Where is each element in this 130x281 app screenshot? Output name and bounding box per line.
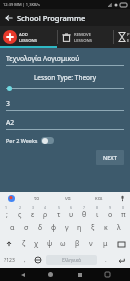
button[interactable]: Recents bbox=[73, 268, 86, 281]
staticText: κ bbox=[104, 223, 108, 233]
button[interactable]: 7 bbox=[78, 204, 91, 220]
staticText: 4 bbox=[44, 205, 47, 210]
staticText: το bbox=[34, 195, 40, 202]
button[interactable]: φ bbox=[47, 220, 60, 236]
button[interactable]: Back bbox=[16, 268, 29, 281]
button[interactable]: χ bbox=[30, 236, 43, 252]
staticText: ν bbox=[89, 239, 93, 249]
button[interactable]: ?123 bbox=[0, 252, 18, 268]
button[interactable]: 8 bbox=[91, 204, 104, 220]
staticText: γ bbox=[65, 223, 69, 233]
staticText: A2 bbox=[6, 118, 15, 127]
staticText: 1 bbox=[5, 205, 8, 210]
staticText: υ bbox=[69, 210, 74, 220]
staticText: , bbox=[24, 256, 26, 264]
staticText: χ bbox=[34, 239, 39, 249]
staticText: . bbox=[105, 256, 107, 264]
button[interactable]: 9 bbox=[104, 204, 117, 220]
staticText: Τεχνολογία Λογισμικού bbox=[6, 54, 80, 63]
staticText: Lesson Type: Theory bbox=[6, 73, 124, 82]
button[interactable]: και bbox=[83, 192, 114, 204]
button[interactable]: λ bbox=[112, 220, 125, 236]
button[interactable]: γ bbox=[60, 220, 73, 236]
button[interactable]: . bbox=[99, 252, 112, 268]
button[interactable]: ζ bbox=[17, 236, 30, 252]
staticText: 9 bbox=[109, 205, 112, 210]
button[interactable]: 5 bbox=[52, 204, 65, 220]
button[interactable]: Home bbox=[44, 268, 57, 281]
staticText: τ bbox=[57, 210, 61, 220]
button[interactable]: η bbox=[73, 220, 86, 236]
button[interactable]: σ bbox=[19, 220, 33, 236]
staticText: ; bbox=[6, 210, 8, 220]
staticText: 8 bbox=[96, 205, 99, 210]
staticText: σ bbox=[24, 223, 29, 233]
staticText: ε bbox=[31, 210, 35, 220]
button[interactable]: κ bbox=[99, 220, 112, 236]
button[interactable]: Ελληνικά bbox=[46, 255, 97, 265]
staticText: μ bbox=[103, 239, 108, 249]
staticText: π bbox=[121, 210, 126, 220]
button[interactable]: A2 bbox=[6, 118, 124, 130]
button[interactable]: 0 bbox=[117, 204, 130, 220]
button[interactable]: REMOVE LESSONS bbox=[58, 26, 113, 48]
staticText: ψ bbox=[47, 239, 53, 249]
staticText: 0 bbox=[122, 205, 125, 210]
staticText: Ελληνικά bbox=[62, 257, 81, 263]
button[interactable]: β bbox=[70, 236, 84, 252]
staticText: λ bbox=[117, 223, 121, 233]
button[interactable]: Τεχνολογία Λογισμικού bbox=[6, 54, 124, 66]
staticText: β bbox=[75, 239, 80, 249]
staticText: ω bbox=[60, 239, 66, 249]
button[interactable]: ξ bbox=[86, 220, 99, 236]
staticText: και bbox=[95, 195, 103, 202]
staticText: η bbox=[77, 223, 82, 233]
staticText: 7 bbox=[83, 205, 86, 210]
button[interactable]: 4 bbox=[39, 204, 52, 220]
staticText: School Programme bbox=[17, 13, 86, 23]
button[interactable]: P E bbox=[114, 26, 130, 48]
button[interactable]: Screenshot bbox=[101, 268, 114, 281]
button[interactable]: Emoji bbox=[18, 252, 31, 268]
button[interactable]: 3 bbox=[26, 204, 39, 220]
button[interactable]: Enter bbox=[112, 252, 130, 268]
button[interactable]: να bbox=[52, 192, 83, 204]
button[interactable]: ω bbox=[56, 236, 70, 252]
staticText: ζ bbox=[22, 239, 26, 249]
staticText: ο bbox=[108, 210, 113, 220]
staticText: REMOVE LESSONS bbox=[74, 32, 93, 43]
staticText: 3 bbox=[32, 205, 35, 210]
button[interactable]: 2 bbox=[13, 204, 26, 220]
staticText: να bbox=[65, 195, 71, 202]
button[interactable]: Per 2 Weeks toggle bbox=[41, 137, 54, 144]
button[interactable]: NEXT bbox=[96, 150, 124, 165]
staticText: ξ bbox=[91, 223, 95, 233]
button[interactable]: ν bbox=[84, 236, 98, 252]
button[interactable]: α bbox=[5, 220, 19, 236]
button[interactable]: ADD LESSONS bbox=[0, 26, 57, 48]
staticText: δ bbox=[38, 223, 43, 233]
button[interactable]: το bbox=[22, 192, 52, 204]
button[interactable] bbox=[6, 85, 124, 92]
button[interactable]: Change language bbox=[31, 252, 44, 268]
staticText: 2 bbox=[19, 205, 22, 210]
button[interactable]: ψ bbox=[43, 236, 56, 252]
staticText: 3 bbox=[6, 99, 10, 108]
button[interactable]: 3 bbox=[6, 99, 124, 111]
staticText: 6 bbox=[70, 205, 73, 210]
button[interactable]: Shift bbox=[0, 236, 17, 252]
button[interactable]: Voice input bbox=[114, 192, 130, 204]
button[interactable]: 1 bbox=[0, 204, 13, 220]
button[interactable]: δ bbox=[33, 220, 47, 236]
button[interactable]: Backspace bbox=[112, 236, 130, 252]
staticText: 12:39 MM | 1,3KB/s bbox=[3, 2, 40, 7]
staticText: θ bbox=[82, 210, 87, 220]
button[interactable]: 6 bbox=[65, 204, 78, 220]
button[interactable]: μ bbox=[98, 236, 112, 252]
staticText: α bbox=[10, 223, 15, 233]
staticText: NEXT bbox=[103, 154, 117, 161]
staticText: ρ bbox=[43, 210, 48, 220]
button[interactable]: Back bbox=[0, 9, 17, 26]
staticText: ς bbox=[18, 210, 22, 220]
button[interactable]: Google bbox=[0, 192, 22, 204]
